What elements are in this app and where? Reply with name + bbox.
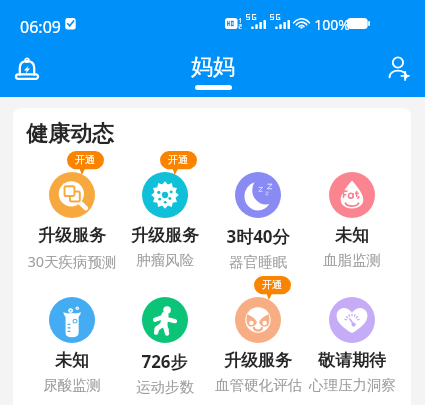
staticText: 726步 bbox=[141, 350, 188, 373]
staticText: 血管硬化评估 bbox=[215, 376, 302, 394]
staticText: 妈妈 bbox=[191, 53, 235, 81]
button[interactable]: 未知 bbox=[305, 172, 399, 269]
staticText: 开通 bbox=[168, 153, 188, 166]
staticText: 升级服务 bbox=[224, 350, 292, 371]
staticText: 开通 bbox=[262, 278, 282, 291]
button[interactable]: 开通 bbox=[118, 172, 211, 269]
staticText: 运动步数 bbox=[136, 378, 194, 396]
staticText: 30天疾病预测 bbox=[27, 251, 117, 271]
staticText: 血脂监测 bbox=[323, 251, 381, 269]
staticText: 06:09 bbox=[20, 16, 61, 38]
staticText: 3时40分 bbox=[226, 225, 290, 248]
staticText: 心理压力洞察 bbox=[309, 376, 396, 394]
staticText: 升级服务 bbox=[131, 225, 199, 246]
button[interactable]: 未知 bbox=[25, 297, 118, 394]
staticText: 肿瘤风险 bbox=[136, 251, 194, 269]
button[interactable]: 开通 bbox=[211, 297, 305, 394]
button[interactable]: 726步 bbox=[118, 297, 211, 396]
button[interactable]: 开通 bbox=[25, 172, 118, 271]
staticText: 器官睡眠 bbox=[229, 253, 287, 271]
staticText: 尿酸监测 bbox=[43, 376, 101, 394]
staticText: 敬请期待 bbox=[318, 350, 386, 371]
button[interactable]: Add member bbox=[376, 46, 420, 90]
staticText: 未知 bbox=[55, 350, 89, 371]
staticText: 升级服务 bbox=[38, 225, 106, 246]
button[interactable]: Notifications bbox=[5, 47, 49, 91]
staticText: 开通 bbox=[75, 153, 95, 166]
staticText: 100% bbox=[314, 15, 350, 34]
staticText: 未知 bbox=[335, 225, 369, 246]
button[interactable]: 3时40分 bbox=[211, 172, 305, 271]
staticText: 健康动态 bbox=[26, 120, 114, 148]
button[interactable]: 敬请期待 bbox=[305, 297, 399, 394]
